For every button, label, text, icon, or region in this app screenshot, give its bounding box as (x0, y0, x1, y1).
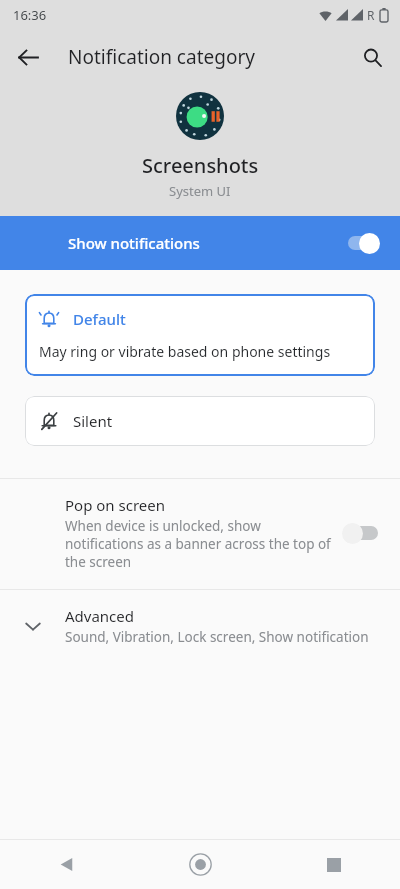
staticText: System UI (169, 182, 231, 200)
button[interactable]: Search (350, 35, 394, 79)
staticText: Pop on screen (65, 495, 165, 515)
button[interactable]: Default (25, 294, 375, 376)
staticText: May ring or vibrate based on phone setti… (39, 342, 331, 361)
staticText: Screenshots (142, 152, 259, 179)
staticText: Advanced (65, 606, 135, 626)
button[interactable]: Back (0, 840, 134, 889)
staticText: When device is unlocked, show notificati… (65, 517, 332, 571)
staticText: Default (73, 309, 126, 329)
staticText: Show notifications (68, 233, 342, 253)
staticText: R (367, 7, 375, 23)
button[interactable]: Pop on screen (0, 479, 400, 589)
staticText: Sound, Vibration, Lock screen, Show noti… (65, 628, 380, 646)
button[interactable]: Show notifications (0, 216, 400, 270)
staticText: Silent (73, 411, 113, 431)
staticText: 16:36 (13, 6, 47, 24)
button[interactable]: Recent apps (267, 840, 400, 889)
button[interactable]: Home (134, 840, 267, 889)
staticText: Notification category (68, 44, 255, 70)
button[interactable]: Advanced (0, 590, 400, 664)
button[interactable]: Silent (25, 396, 375, 446)
button[interactable]: Back (8, 37, 48, 77)
